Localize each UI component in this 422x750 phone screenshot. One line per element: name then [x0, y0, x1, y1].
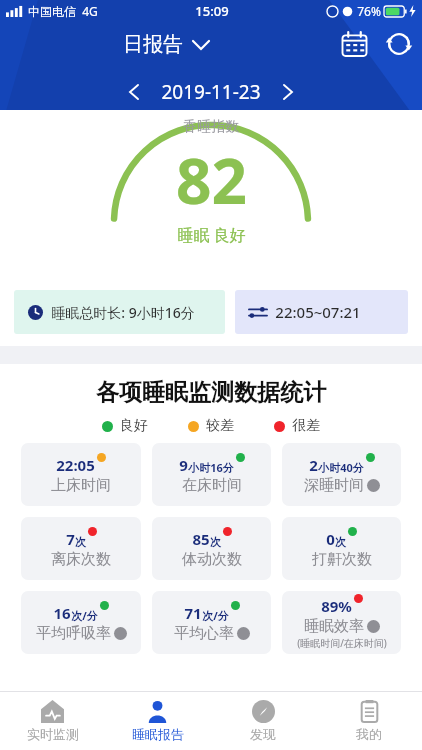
- staticText: 在床时间: [182, 476, 242, 495]
- button[interactable]: 睡眠总时长: 9小时16分: [14, 290, 225, 334]
- staticText: 平均心率: [174, 624, 234, 643]
- staticText: 0: [326, 529, 335, 549]
- button[interactable]: 22:05~07:21: [235, 290, 408, 334]
- staticText: 各项睡眠监测数据统计: [96, 378, 326, 407]
- button[interactable]: 7: [21, 517, 141, 580]
- button[interactable]: 85: [152, 517, 271, 580]
- staticText: 15:09: [195, 2, 229, 20]
- staticText: 次/分: [71, 608, 98, 623]
- staticText: 71: [184, 603, 202, 623]
- staticText: 睡眠效率: [304, 617, 364, 636]
- button[interactable]: 22:05: [21, 443, 141, 506]
- staticText: (睡眠时间/在床时间): [297, 636, 387, 650]
- staticText: 较差: [206, 417, 234, 435]
- button[interactable]: 我的: [316, 692, 422, 750]
- staticText: 89%: [321, 596, 352, 616]
- staticText: 实时监测: [27, 726, 79, 742]
- staticText: 日报告: [123, 32, 183, 57]
- staticText: 发现: [250, 726, 276, 742]
- staticText: 22:05~07:21: [275, 302, 361, 322]
- button[interactable]: 睡眠报告: [105, 692, 210, 750]
- button[interactable]: Previous day: [117, 75, 151, 109]
- staticText: 我的: [356, 726, 382, 742]
- button[interactable]: 9: [152, 443, 271, 506]
- button[interactable]: 日报告: [115, 28, 217, 61]
- staticText: 平均呼吸率: [36, 624, 111, 643]
- staticText: 体动次数: [182, 550, 242, 569]
- staticText: 离床次数: [51, 550, 111, 569]
- staticText: 16: [53, 603, 71, 623]
- button[interactable]: 0: [282, 517, 401, 580]
- button[interactable]: Refresh: [376, 24, 422, 64]
- staticText: 上床时间: [51, 476, 111, 495]
- staticText: 次/分: [202, 608, 229, 623]
- button[interactable]: 16: [21, 591, 141, 654]
- staticText: 次: [75, 535, 86, 549]
- button[interactable]: 实时监测: [0, 692, 105, 750]
- button[interactable]: 89%: [282, 591, 401, 654]
- staticText: 2019-11-23: [161, 79, 261, 105]
- staticText: 打鼾次数: [312, 550, 372, 569]
- staticText: 4G: [82, 3, 98, 19]
- staticText: 82: [176, 138, 247, 222]
- button[interactable]: Next day: [271, 75, 305, 109]
- staticText: 85: [192, 529, 210, 549]
- staticText: 小时40分: [318, 460, 364, 475]
- staticText: 香睡指数: [183, 118, 239, 136]
- staticText: 小时16分: [188, 460, 234, 475]
- button[interactable]: 2: [282, 443, 401, 506]
- staticText: 睡眠报告: [132, 726, 184, 742]
- staticText: 次: [210, 535, 221, 549]
- staticText: 睡眠总时长: 9小时16分: [51, 303, 195, 322]
- staticText: 7: [66, 529, 75, 549]
- staticText: 睡眠 良好: [177, 224, 246, 246]
- staticText: 良好: [120, 417, 148, 435]
- button[interactable]: 发现: [210, 692, 316, 750]
- staticText: 22:05: [56, 455, 95, 475]
- staticText: 9: [179, 455, 188, 475]
- staticText: 2: [309, 455, 318, 475]
- staticText: 中国电信: [28, 4, 76, 19]
- button[interactable]: Calendar: [332, 24, 376, 64]
- staticText: 很差: [292, 417, 320, 435]
- staticText: 76%: [357, 3, 381, 19]
- staticText: 次: [335, 535, 346, 549]
- staticText: 深睡时间: [304, 476, 364, 495]
- button[interactable]: 71: [152, 591, 271, 654]
